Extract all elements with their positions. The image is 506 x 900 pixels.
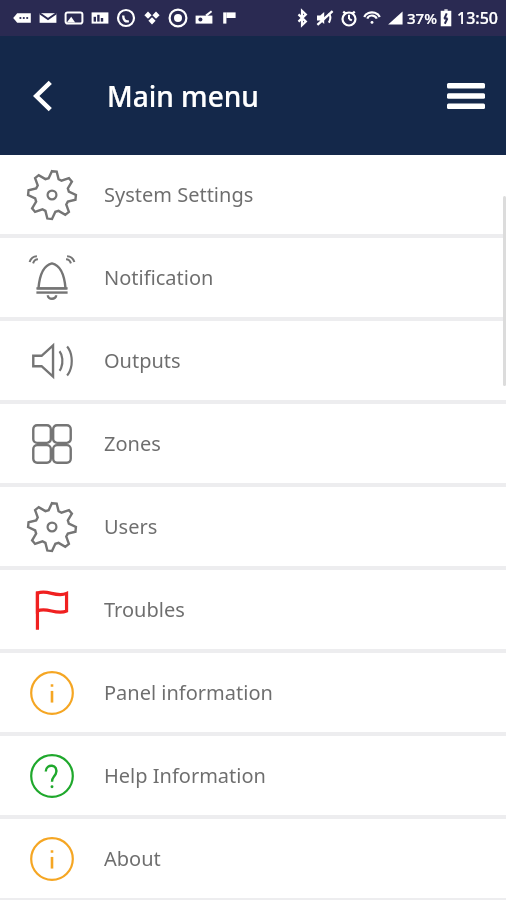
staticText: Main menu <box>107 77 259 115</box>
staticText: Outputs <box>104 347 181 374</box>
staticText: Zones <box>104 430 161 457</box>
button[interactable]: Notification <box>0 238 506 317</box>
button[interactable]: Menu <box>438 68 494 124</box>
button[interactable]: Help Information <box>0 736 506 815</box>
staticText: Panel information <box>104 679 273 706</box>
button[interactable]: Back <box>14 67 72 125</box>
button[interactable]: System Settings <box>0 155 506 234</box>
staticText: System Settings <box>104 181 254 208</box>
staticText: Notification <box>104 264 214 291</box>
staticText: 37% <box>407 8 437 28</box>
staticText: 13:50 <box>457 7 498 29</box>
button[interactable]: Panel information <box>0 653 506 732</box>
staticText: About <box>104 845 161 872</box>
button[interactable]: Zones <box>0 404 506 483</box>
button[interactable]: About <box>0 819 506 898</box>
button[interactable]: Outputs <box>0 321 506 400</box>
button[interactable]: Troubles <box>0 570 506 649</box>
staticText: Help Information <box>104 762 266 789</box>
staticText: Users <box>104 513 158 540</box>
button[interactable]: Users <box>0 487 506 566</box>
staticText: Troubles <box>104 596 185 623</box>
